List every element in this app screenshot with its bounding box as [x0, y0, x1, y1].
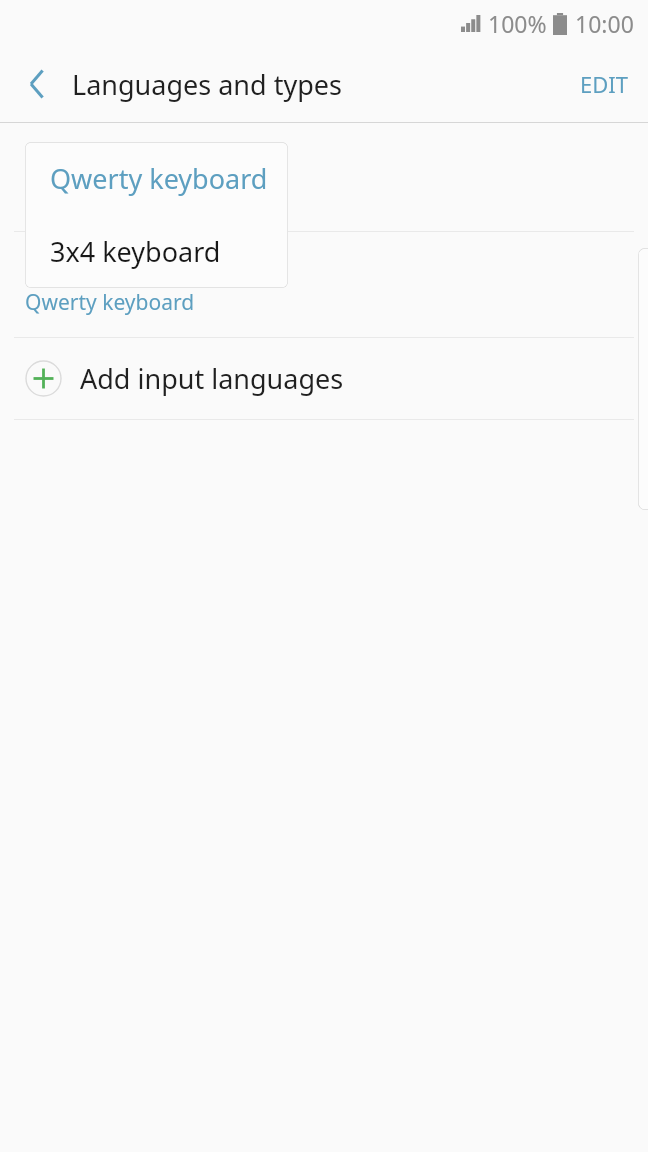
staticText: Add input languages	[80, 360, 344, 397]
button[interactable]: 3x4 keyboard	[25, 215, 288, 288]
button[interactable]: Qwerty keyboard	[0, 232, 648, 337]
staticText: Qwerty keyboard	[25, 288, 195, 317]
staticText: Languages and types	[72, 66, 342, 103]
staticText: 100%	[488, 8, 547, 39]
staticText: Qwerty keyboard	[50, 160, 268, 197]
button[interactable]: Add input languages	[0, 338, 648, 419]
button[interactable]: EDIT	[560, 46, 648, 122]
staticText: 3x4 keyboard	[50, 233, 221, 270]
staticText: 10:00	[575, 8, 634, 39]
button[interactable]: Qwerty keyboard	[25, 142, 288, 215]
button[interactable]	[0, 123, 648, 231]
button[interactable]: Navigate up	[10, 57, 64, 111]
staticText: EDIT	[580, 69, 628, 99]
